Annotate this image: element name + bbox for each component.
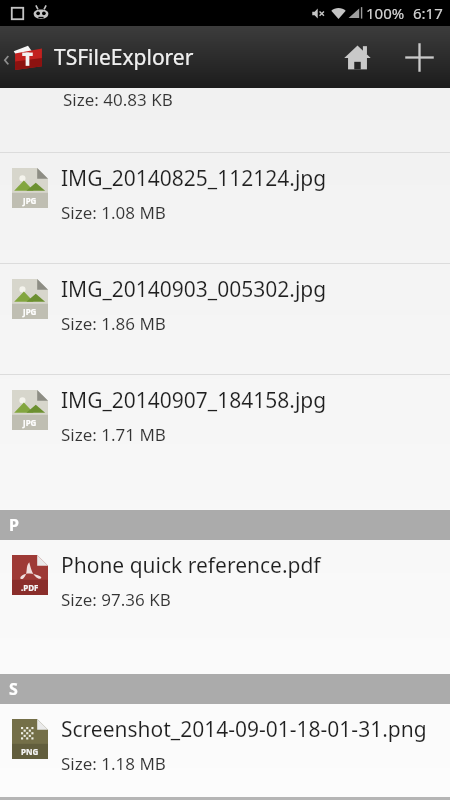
staticText: Size: 1.08 MB	[61, 201, 166, 224]
staticText: IMG_20140903_005302.jpg	[61, 275, 327, 304]
staticText: .PDF	[21, 582, 39, 593]
staticText: Size: 1.86 MB	[61, 312, 166, 335]
staticText: Size: 1.18 MB	[61, 752, 166, 775]
button[interactable]: Home	[326, 26, 388, 88]
staticText: 6:17	[413, 3, 443, 23]
staticText: IMG_20140825_112124.jpg	[61, 164, 327, 193]
staticText: TSFileExplorer	[54, 43, 194, 72]
button[interactable]: Add	[388, 26, 450, 88]
button[interactable]: PNG	[0, 704, 450, 800]
staticText: Phone quick reference.pdf	[61, 551, 321, 580]
button[interactable]: JPG	[0, 264, 450, 374]
staticText: JPG	[23, 195, 37, 206]
staticText: JPG	[23, 417, 37, 428]
staticText: Size: 1.71 MB	[61, 423, 166, 446]
staticText: JPG	[23, 306, 37, 317]
staticText: S	[9, 678, 18, 700]
staticText: Size: 40.83 KB	[63, 88, 173, 111]
staticText: P	[9, 514, 19, 536]
button[interactable]: .PDF	[0, 540, 450, 650]
staticText: 100%	[366, 3, 405, 23]
staticText: ‹	[3, 42, 10, 72]
staticText: PNG	[21, 746, 39, 757]
staticText: IMG_20140907_184158.jpg	[61, 386, 327, 415]
button[interactable]: JPG	[0, 153, 450, 263]
button[interactable]: JPG	[0, 375, 450, 485]
staticText: Size: 97.36 KB	[61, 588, 171, 611]
staticText: Screenshot_2014-09-01-18-01-31.png	[61, 715, 427, 744]
